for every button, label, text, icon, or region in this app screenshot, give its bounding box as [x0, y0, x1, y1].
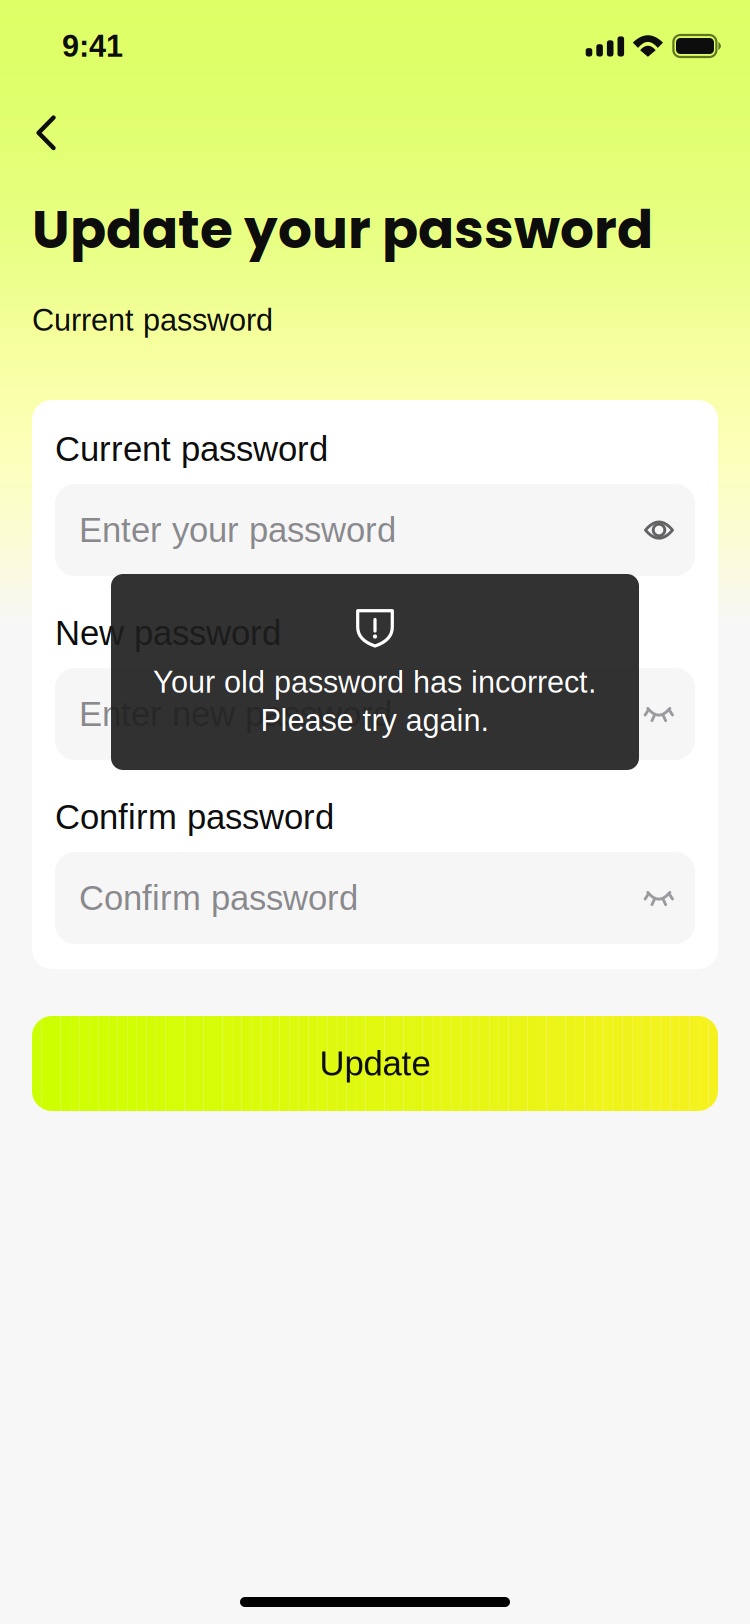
staticText: Confirm password [79, 879, 358, 917]
button[interactable]: Confirm password [55, 852, 695, 944]
staticText: 9:41 [62, 29, 123, 63]
staticText: Your old password has incorrect. [153, 665, 597, 699]
staticText: Please try again. [260, 703, 489, 738]
staticText: Confirm password [55, 798, 334, 836]
staticText: Update [319, 1044, 430, 1083]
button[interactable]: Back [17, 96, 75, 170]
staticText: Update your password [32, 192, 653, 267]
button[interactable]: Enter new password [55, 668, 695, 760]
button[interactable]: Enter your password [55, 484, 695, 576]
staticText: Enter your password [79, 511, 396, 549]
staticText: Current password [32, 303, 273, 337]
staticText: Enter new password [79, 695, 392, 733]
button[interactable]: Update [32, 1016, 718, 1111]
staticText: New password [55, 614, 281, 652]
staticText: Current password [55, 430, 328, 468]
